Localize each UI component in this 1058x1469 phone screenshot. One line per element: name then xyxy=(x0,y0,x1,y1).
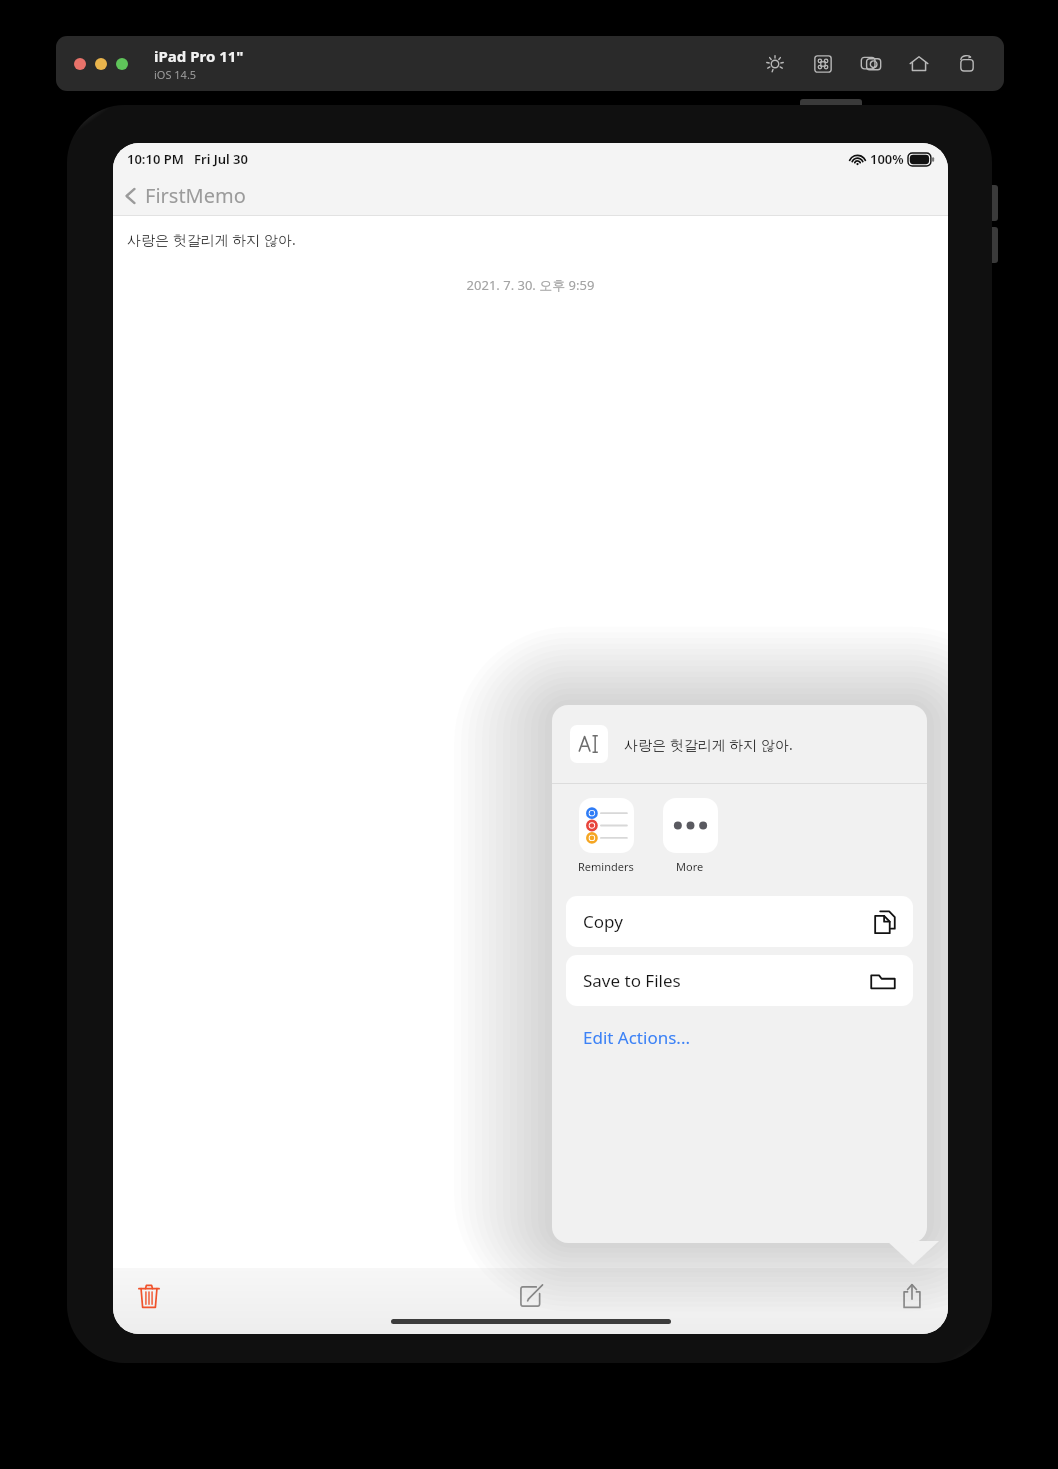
button[interactable]: Appearance xyxy=(762,51,788,77)
button[interactable]: Share xyxy=(890,1274,934,1318)
staticText: 10:10 PM xyxy=(127,150,184,168)
staticText: Copy xyxy=(583,910,623,933)
button[interactable]: Rotate xyxy=(954,51,980,77)
button[interactable]: Delete xyxy=(127,1274,171,1318)
button[interactable]: Edit Actions... xyxy=(552,1022,927,1052)
button[interactable]: FirstMemo xyxy=(123,182,246,209)
button[interactable]: Home xyxy=(906,51,932,77)
staticText: 100% xyxy=(870,150,904,168)
staticText: 사랑은 헛갈리게 하지 않아. xyxy=(127,230,296,249)
staticText: 사랑은 헛갈리게 하지 않아. xyxy=(624,735,793,754)
staticText: Reminders xyxy=(578,859,634,874)
staticText: iPad Pro 11" xyxy=(154,46,244,66)
button[interactable]: Keyboard xyxy=(810,51,836,77)
staticText: Fri Jul 30 xyxy=(194,150,248,168)
staticText: 2021. 7. 30. 오후 9:59 xyxy=(113,276,948,294)
button[interactable]: New note xyxy=(509,1274,553,1318)
staticText: FirstMemo xyxy=(145,182,246,209)
staticText: Edit Actions... xyxy=(583,1026,690,1049)
staticText: More xyxy=(676,859,704,874)
button[interactable]: More xyxy=(654,798,726,874)
button[interactable]: Save to Files xyxy=(566,955,913,1006)
button[interactable]: 사랑은 헛갈리게 하지 않아. xyxy=(552,705,927,783)
button[interactable]: Screenshot xyxy=(858,51,884,77)
staticText: Save to Files xyxy=(583,969,681,992)
button[interactable]: Copy xyxy=(566,896,913,947)
button[interactable]: Reminders xyxy=(570,798,642,874)
staticText: iOS 14.5 xyxy=(154,67,197,82)
